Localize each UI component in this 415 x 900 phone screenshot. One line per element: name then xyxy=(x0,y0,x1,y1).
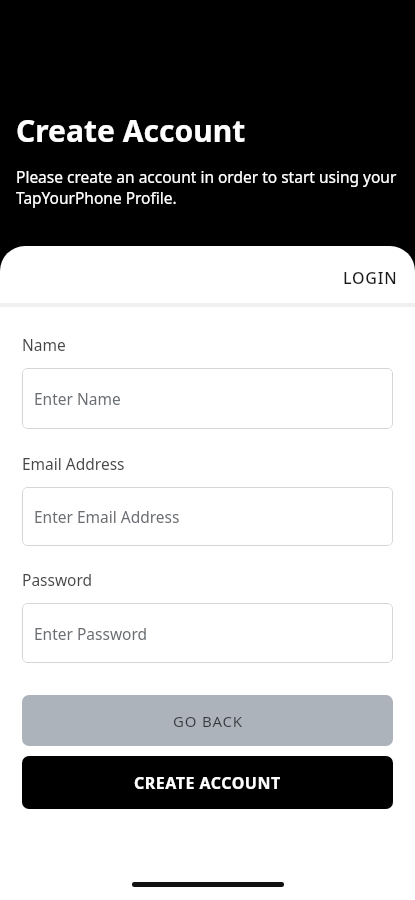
button[interactable]: Enter Name xyxy=(22,368,393,429)
staticText: Password xyxy=(22,569,93,590)
staticText: GO BACK xyxy=(173,711,243,731)
staticText: CREATE ACCOUNT xyxy=(134,772,281,794)
button[interactable]: LOGIN xyxy=(326,259,415,297)
staticText: Create Account xyxy=(16,110,246,151)
button[interactable]: Enter Password xyxy=(22,603,393,663)
staticText: Enter Password xyxy=(34,623,148,644)
button[interactable]: CREATE ACCOUNT xyxy=(22,756,393,809)
staticText: LOGIN xyxy=(343,267,398,289)
staticText: Please create an account in order to sta… xyxy=(16,166,397,209)
staticText: Name xyxy=(22,334,66,355)
button[interactable]: GO BACK xyxy=(22,695,393,746)
staticText: Email Address xyxy=(22,453,125,474)
staticText: Enter Email Address xyxy=(34,506,180,527)
staticText: Enter Name xyxy=(34,388,121,409)
button[interactable]: Enter Email Address xyxy=(22,487,393,546)
